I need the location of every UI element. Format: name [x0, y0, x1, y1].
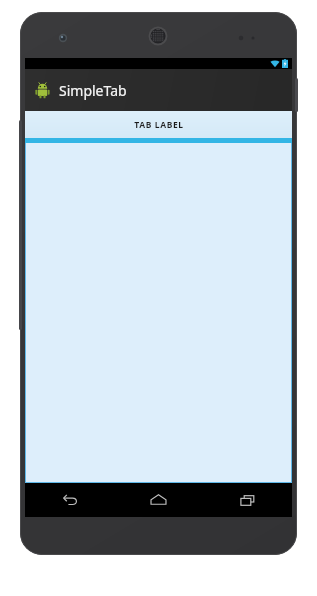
- button[interactable]: Recent apps: [203, 483, 292, 517]
- staticText: SimpleTab: [59, 81, 127, 100]
- button[interactable]: Back: [25, 483, 114, 517]
- button[interactable]: Home: [114, 483, 203, 517]
- staticText: TAB LABEL: [134, 119, 184, 131]
- button[interactable]: TAB LABEL: [25, 111, 292, 143]
